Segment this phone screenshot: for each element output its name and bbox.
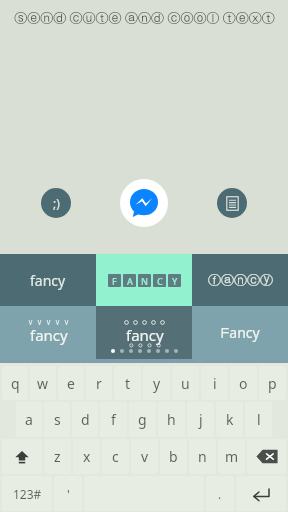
staticText: q — [11, 374, 20, 393]
button[interactable]: s — [44, 402, 70, 437]
button[interactable]: fancy — [0, 306, 96, 359]
staticText: z — [54, 447, 61, 466]
staticText: ' — [67, 486, 70, 502]
staticText: r — [96, 374, 102, 393]
staticText: 123# — [13, 486, 42, 502]
button[interactable]: m — [218, 439, 245, 474]
button[interactable]: Clipboard — [217, 188, 247, 218]
button[interactable]: b — [160, 439, 187, 474]
staticText: t — [125, 374, 131, 393]
staticText: p — [268, 374, 277, 393]
button[interactable]: v — [131, 439, 158, 474]
button[interactable]: l — [245, 402, 272, 437]
button[interactable]: w — [30, 366, 56, 400]
staticText: s — [54, 410, 61, 429]
button[interactable]: ⓕⓐⓝⓒⓨ — [192, 254, 288, 306]
button[interactable]: ᖴancy — [192, 306, 288, 359]
button[interactable]: j — [187, 402, 214, 437]
button[interactable]: o — [230, 366, 257, 400]
button[interactable]: fancy — [96, 306, 192, 359]
button[interactable]: Enter — [236, 476, 286, 511]
button[interactable]: F — [96, 254, 192, 306]
staticText: a — [25, 410, 33, 429]
staticText: h — [167, 410, 176, 429]
button[interactable]: u — [172, 366, 199, 400]
button[interactable]: f — [100, 402, 127, 437]
staticText: F — [112, 275, 117, 287]
staticText: l — [257, 410, 261, 429]
button[interactable]: d — [72, 402, 98, 437]
staticText: fancy — [30, 271, 66, 290]
staticText: ;) — [53, 195, 60, 211]
staticText: C — [157, 275, 163, 287]
staticText: d — [81, 410, 90, 429]
button[interactable]: y — [143, 366, 170, 400]
button[interactable]: Emoticons — [41, 188, 71, 218]
button[interactable]: k — [216, 402, 243, 437]
staticText: ⓢⓔⓝⓓ ⓒⓤⓣⓔ ⓐⓝⓓ ⓒⓞⓞⓛ ⓣⓔⓧⓣ — [14, 9, 275, 27]
button[interactable]: 123# — [2, 476, 52, 511]
button[interactable]: n — [189, 439, 216, 474]
button[interactable]: fancy — [0, 254, 96, 306]
button[interactable]: Backspace — [247, 439, 286, 474]
staticText: ᖴancy — [221, 323, 260, 342]
staticText: m — [225, 447, 239, 466]
staticText: g — [138, 410, 147, 429]
staticText: x — [83, 447, 91, 466]
button[interactable]: Shift — [2, 439, 42, 474]
button[interactable]: z — [44, 439, 71, 474]
button[interactable]: p — [259, 366, 286, 400]
button[interactable]: . — [206, 476, 234, 511]
staticText: . — [218, 486, 222, 502]
staticText: w — [37, 374, 49, 393]
staticText: c — [112, 447, 119, 466]
staticText: n — [198, 447, 207, 466]
button[interactable]: e — [58, 366, 84, 400]
staticText: b — [169, 447, 178, 466]
button[interactable]: h — [158, 402, 185, 437]
staticText: Y — [172, 275, 178, 287]
button[interactable]: q — [2, 366, 28, 400]
button[interactable]: ' — [54, 476, 82, 511]
staticText: v — [141, 447, 149, 466]
staticText: A — [127, 275, 133, 287]
staticText: e — [67, 374, 75, 393]
button[interactable]: x — [73, 439, 100, 474]
staticText: o — [239, 374, 248, 393]
button[interactable]: i — [201, 366, 228, 400]
staticText: k — [226, 410, 234, 429]
staticText: N — [141, 275, 148, 287]
button[interactable]: a — [16, 402, 42, 437]
staticText: j — [199, 410, 203, 429]
staticText: f — [111, 410, 116, 429]
staticText: y — [153, 374, 161, 393]
button[interactable]: r — [86, 366, 112, 400]
staticText: u — [181, 374, 190, 393]
button[interactable]: Send to Messenger — [120, 179, 168, 227]
button[interactable]: g — [129, 402, 156, 437]
staticText: i — [213, 374, 217, 393]
staticText: fancy — [126, 325, 164, 345]
button[interactable]: t — [114, 366, 141, 400]
button[interactable]: c — [102, 439, 129, 474]
staticText: ⓕⓐⓝⓒⓨ — [208, 272, 273, 288]
staticText: fancy — [30, 325, 68, 345]
